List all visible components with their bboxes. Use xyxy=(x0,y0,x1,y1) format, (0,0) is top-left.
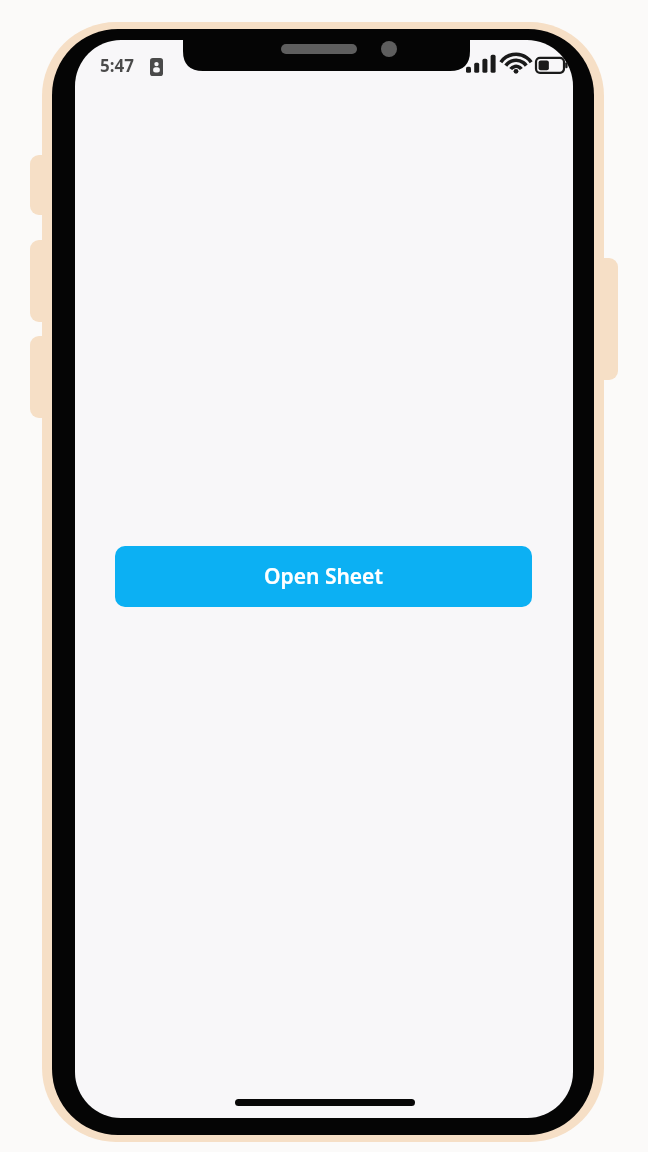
other: Signal, Wi-Fi and battery status xyxy=(466,52,558,78)
staticText: 5:47 xyxy=(100,54,134,77)
staticText: Open Sheet xyxy=(264,562,383,591)
button[interactable]: Open Sheet xyxy=(115,546,532,607)
